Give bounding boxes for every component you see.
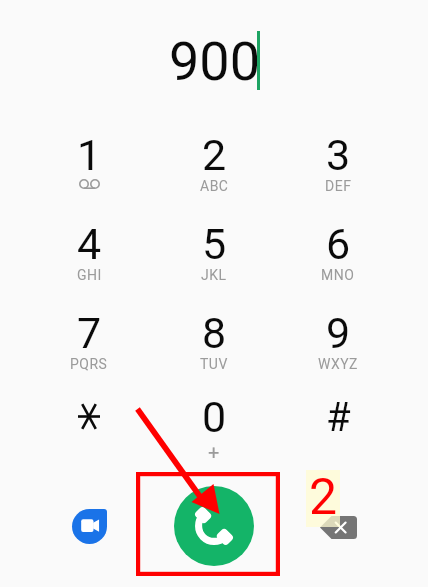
button[interactable]: 7 [33, 288, 145, 374]
button[interactable]: 5 [158, 199, 270, 285]
staticText: 0 [202, 392, 227, 442]
button[interactable]: 8 [158, 288, 270, 374]
staticText: 7 [77, 308, 102, 358]
button[interactable]: Video call [61, 498, 117, 554]
button[interactable]: 2 [158, 110, 270, 196]
button[interactable]: Star [33, 377, 145, 463]
staticText: 9 [326, 308, 351, 358]
button[interactable]: 4 [33, 199, 145, 285]
staticText: MNO [321, 267, 355, 283]
staticText: 8 [202, 308, 227, 358]
staticText: # [326, 394, 351, 441]
button[interactable]: 3 [282, 110, 394, 196]
staticText: WXYZ [318, 356, 358, 372]
button[interactable]: 9 [282, 288, 394, 374]
button[interactable]: 6 [282, 199, 394, 285]
staticText: DEF [325, 178, 352, 194]
staticText: 3 [326, 130, 351, 180]
staticText: ABC [200, 178, 229, 194]
staticText: 4 [77, 219, 102, 269]
button[interactable]: 1 [33, 110, 145, 196]
staticText: PQRS [70, 356, 108, 372]
button[interactable]: Backspace [310, 499, 366, 555]
staticText: 1 [77, 130, 102, 180]
button[interactable]: 900 [0, 0, 428, 120]
staticText: 2 [309, 468, 338, 525]
staticText: 900 [169, 30, 261, 93]
staticText: 5 [202, 219, 227, 269]
button[interactable]: Call [174, 486, 254, 566]
staticText: 2 [202, 130, 227, 180]
staticText: TUV [200, 356, 228, 372]
button[interactable]: # [282, 374, 394, 460]
staticText: 6 [326, 219, 351, 269]
staticText: JKL [201, 267, 227, 283]
staticText: GHI [77, 267, 102, 283]
button[interactable]: 0 [158, 372, 270, 458]
staticText: + [208, 440, 220, 463]
